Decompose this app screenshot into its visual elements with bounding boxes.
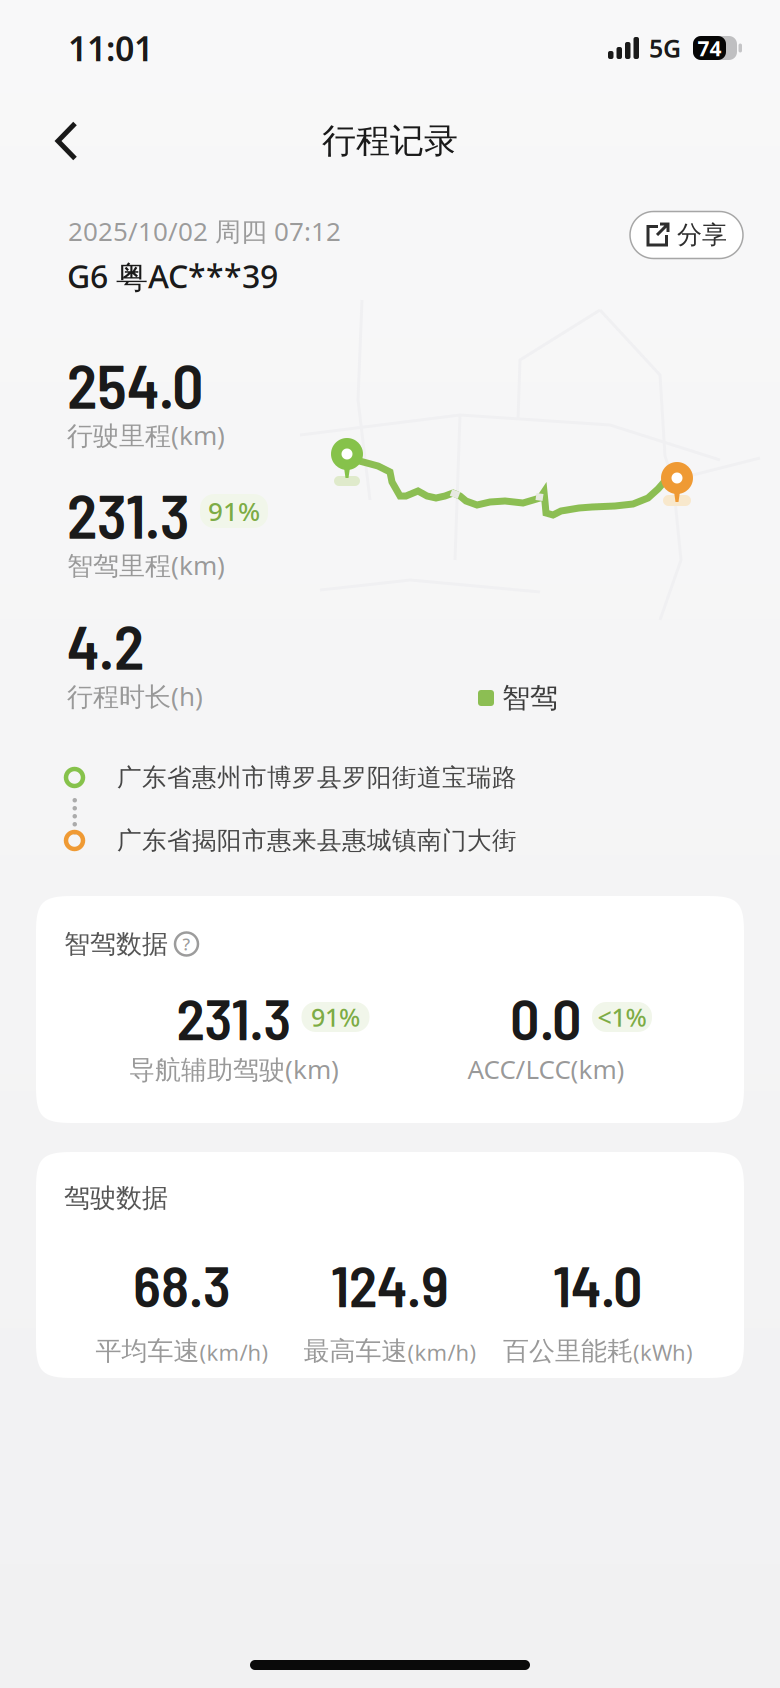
staticText: 14.0 <box>553 1249 643 1319</box>
staticText: 驾驶数据 <box>64 1182 168 1214</box>
staticText: 最高车速(km/h) <box>303 1335 476 1367</box>
staticText: 智驾数据 <box>64 928 168 960</box>
button[interactable] <box>0 98 78 183</box>
staticText: 4.2 <box>67 608 144 682</box>
staticText: 导航辅助驾驶(km) <box>129 1052 339 1086</box>
staticText: 行程记录 <box>322 120 458 162</box>
staticText: 平均车速(km/h) <box>95 1335 268 1367</box>
staticText: 5G <box>649 31 681 65</box>
staticText: ? <box>182 932 190 956</box>
staticText: 254.0 <box>67 347 204 421</box>
staticText: 231.3 <box>176 982 291 1052</box>
staticText: ACC/LCC(km) <box>467 1052 624 1086</box>
staticText: 行程时长(h) <box>67 678 203 714</box>
staticText: 智驾里程(km) <box>67 547 225 583</box>
staticText: <1% <box>597 1000 646 1034</box>
staticText: 11:01 <box>68 25 153 71</box>
staticText: 0.0 <box>510 982 582 1052</box>
staticText: 124.9 <box>331 1249 449 1319</box>
staticText: 智驾 <box>502 680 558 716</box>
button[interactable]: 分享 <box>630 211 743 258</box>
staticText: 广东省惠州市博罗县罗阳街道宝瑞路 <box>117 762 517 793</box>
staticText: 2025/10/02 周四 07:12 <box>68 213 341 249</box>
staticText: 广东省揭阳市惠来县惠城镇南门大街 <box>117 825 517 856</box>
staticText: 74 <box>697 34 721 62</box>
staticText: G6 粤AC***39 <box>67 254 278 298</box>
staticText: 行驶里程(km) <box>67 417 225 453</box>
staticText: 91% <box>208 493 260 529</box>
staticText: 91% <box>311 1000 360 1034</box>
button[interactable]: ? <box>174 931 199 956</box>
staticText: 百公里能耗(kWh) <box>503 1335 693 1367</box>
staticText: 231.3 <box>67 477 190 551</box>
staticText: 68.3 <box>133 1249 231 1319</box>
staticText: 分享 <box>677 219 727 251</box>
